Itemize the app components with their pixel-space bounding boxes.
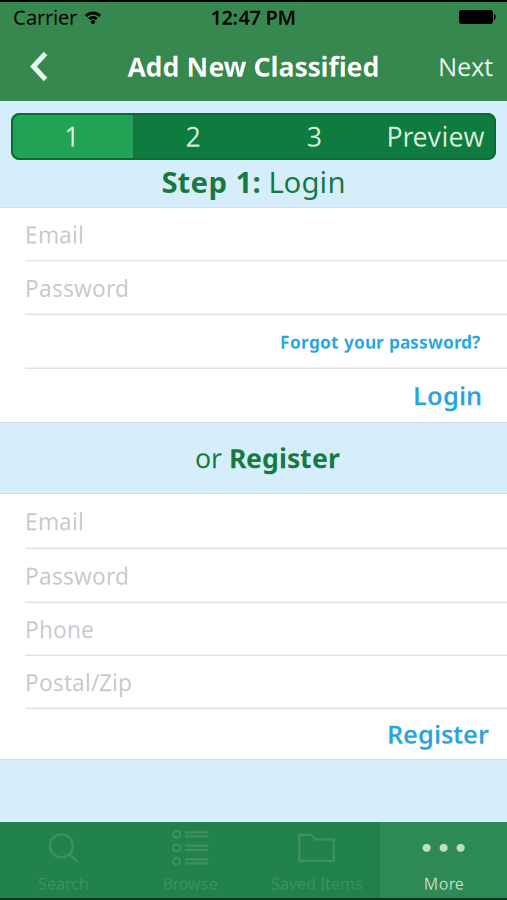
button[interactable]: Email — [0, 494, 507, 549]
staticText: 1 — [64, 119, 79, 154]
staticText: Step 1: — [161, 162, 260, 201]
button[interactable]: Password — [0, 261, 507, 315]
staticText: 12:47 PM — [210, 4, 296, 30]
button[interactable]: 2 — [132, 113, 253, 160]
staticText: Phone — [25, 614, 94, 644]
button[interactable]: Saved Items — [253, 822, 380, 898]
button[interactable]: Next — [438, 50, 507, 83]
staticText: Login — [260, 162, 345, 201]
staticText: Carrier — [13, 4, 77, 30]
button[interactable]: More — [380, 822, 507, 898]
staticText: 2 — [185, 119, 200, 154]
staticText: or — [195, 440, 229, 476]
button[interactable]: Search — [0, 822, 127, 898]
staticText: Add New Classified — [127, 49, 379, 84]
staticText: Search — [38, 873, 89, 894]
button[interactable]: Forgot your password? — [280, 330, 507, 353]
staticText: 3 — [307, 119, 322, 154]
staticText: Register — [387, 717, 489, 751]
button[interactable]: Email — [0, 208, 507, 261]
staticText: Email — [25, 506, 84, 536]
button[interactable]: Login — [413, 379, 507, 412]
button[interactable]: 3 — [253, 113, 375, 160]
staticText: Preview — [386, 119, 484, 154]
staticText: Postal/Zip — [25, 667, 132, 697]
button[interactable]: Postal/Zip — [0, 656, 507, 709]
button[interactable]: 1 — [11, 113, 132, 160]
staticText: More — [424, 873, 464, 894]
button[interactable]: Register — [229, 440, 340, 476]
staticText: Email — [25, 220, 84, 250]
staticText: Password — [25, 273, 129, 303]
button[interactable]: Password — [0, 549, 507, 603]
staticText: Saved Items — [271, 873, 363, 894]
button[interactable]: Phone — [0, 603, 507, 656]
button[interactable]: Browse — [127, 822, 254, 898]
staticText: Forgot your password? — [280, 330, 480, 353]
staticText: Login — [413, 379, 482, 412]
button[interactable]: Preview — [375, 113, 496, 160]
staticText: Register — [229, 440, 340, 476]
staticText: Password — [25, 561, 129, 591]
staticText: Next — [438, 50, 493, 83]
button[interactable]: Register — [387, 717, 507, 751]
button[interactable]: Back — [0, 51, 66, 82]
staticText: Browse — [163, 873, 218, 894]
